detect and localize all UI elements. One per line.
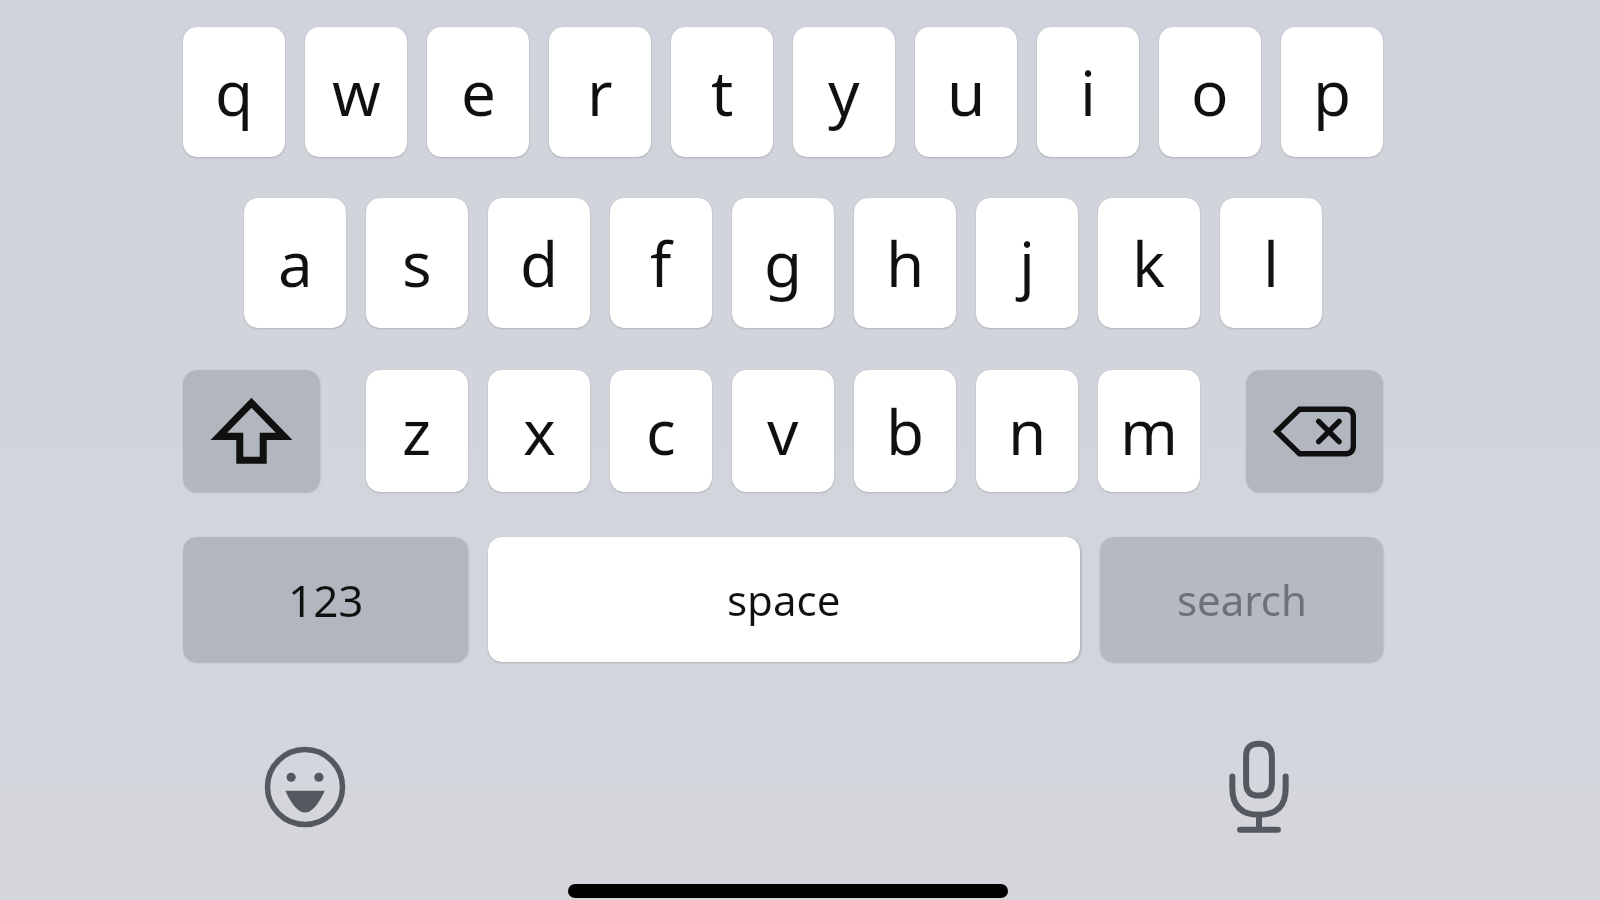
button[interactable]: a (244, 198, 346, 328)
button[interactable]: j (976, 198, 1078, 328)
button[interactable]: x (488, 370, 590, 492)
button[interactable]: p (1281, 27, 1383, 157)
button[interactable]: n (976, 370, 1078, 492)
staticText: w (332, 50, 381, 134)
button[interactable]: o (1159, 27, 1261, 157)
button[interactable]: l (1220, 198, 1322, 328)
button[interactable]: v (732, 370, 834, 492)
staticText: m (1120, 389, 1178, 473)
staticText: r (587, 50, 613, 134)
button[interactable]: Shift (183, 370, 320, 492)
button[interactable]: u (915, 27, 1017, 157)
staticText: h (886, 221, 925, 305)
staticText: l (1263, 221, 1279, 305)
button[interactable]: Emoji (262, 744, 348, 830)
button[interactable]: q (183, 27, 285, 157)
staticText: z (402, 389, 432, 473)
staticText: c (646, 389, 676, 473)
staticText: x (523, 389, 556, 473)
button[interactable]: m (1098, 370, 1200, 492)
staticText: e (461, 50, 496, 134)
button[interactable]: b (854, 370, 956, 492)
button[interactable]: e (427, 27, 529, 157)
staticText: i (1080, 50, 1096, 134)
staticText: a (278, 221, 313, 305)
staticText: t (711, 50, 734, 134)
staticText: n (1008, 389, 1047, 473)
button[interactable]: r (549, 27, 651, 157)
button[interactable]: z (366, 370, 468, 492)
staticText: q (215, 50, 254, 134)
button[interactable]: y (793, 27, 895, 157)
staticText: space (727, 571, 841, 628)
staticText: u (947, 50, 986, 134)
button[interactable]: h (854, 198, 956, 328)
button[interactable]: Numbers (183, 537, 468, 662)
staticText: j (1019, 221, 1035, 305)
button[interactable]: Space (488, 537, 1080, 662)
staticText: y (828, 50, 860, 134)
staticText: 123 (288, 570, 364, 630)
staticText: s (402, 221, 432, 305)
button[interactable]: Search (1100, 537, 1383, 662)
staticText: search (1177, 571, 1307, 628)
button[interactable]: Dictate (1216, 738, 1302, 834)
staticText: v (767, 389, 799, 473)
button[interactable]: s (366, 198, 468, 328)
staticText: o (1191, 50, 1229, 134)
button[interactable]: f (610, 198, 712, 328)
button[interactable]: i (1037, 27, 1139, 157)
button[interactable]: t (671, 27, 773, 157)
button[interactable]: Backspace (1246, 370, 1383, 492)
button[interactable]: g (732, 198, 834, 328)
button[interactable]: w (305, 27, 407, 157)
button[interactable]: c (610, 370, 712, 492)
button[interactable]: k (1098, 198, 1200, 328)
staticText: f (650, 221, 672, 305)
staticText: b (886, 389, 925, 473)
staticText: k (1132, 221, 1166, 305)
button[interactable]: d (488, 198, 590, 328)
staticText: g (764, 221, 803, 305)
staticText: d (520, 221, 559, 305)
staticText: p (1313, 50, 1352, 134)
